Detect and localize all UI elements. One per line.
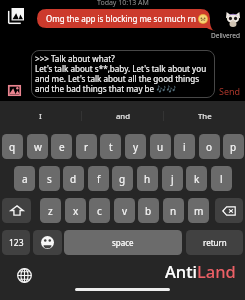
staticText: space: [112, 237, 134, 248]
button[interactable]: d: [63, 166, 84, 191]
staticText: and: [116, 111, 130, 122]
staticText: t: [109, 140, 113, 154]
staticText: return: [203, 237, 227, 248]
staticText: m: [194, 204, 204, 218]
button[interactable]: Photos: [7, 7, 24, 24]
button[interactable]: k: [186, 166, 207, 191]
button[interactable]: m: [188, 198, 209, 223]
staticText: Anti: [165, 260, 197, 282]
button[interactable]: x: [65, 198, 86, 223]
staticText: Send: [219, 85, 241, 97]
button[interactable]: t: [100, 134, 121, 159]
button[interactable]: h: [137, 166, 158, 191]
staticText: p: [230, 140, 237, 154]
button[interactable]: o: [199, 134, 220, 159]
staticText: z: [48, 204, 53, 218]
staticText: >>> Talk about what? Let's talk about s*…: [35, 53, 215, 94]
staticText: Land: [197, 260, 236, 282]
staticText: c: [97, 204, 102, 218]
button[interactable]: l: [211, 166, 232, 191]
staticText: a: [22, 172, 28, 186]
staticText: v: [122, 204, 128, 218]
staticText: g: [119, 172, 126, 186]
button[interactable]: j: [162, 166, 183, 191]
staticText: 123: [9, 237, 24, 249]
staticText: s: [47, 172, 52, 186]
staticText: k: [194, 172, 200, 186]
staticText: i: [183, 140, 186, 154]
staticText: Delivered: [211, 31, 240, 40]
button[interactable]: y: [125, 134, 146, 159]
button[interactable]: q: [2, 134, 23, 159]
staticText: Today 10:13 AM: [97, 0, 149, 8]
button[interactable]: n: [163, 198, 184, 223]
staticText: f: [97, 172, 101, 186]
staticText: Omg the app is blocking me so much rn: [46, 13, 198, 24]
staticText: I: [39, 111, 42, 122]
button[interactable]: >>> Talk about what? Let's talk about s*…: [31, 50, 215, 98]
button[interactable]: g: [112, 166, 133, 191]
staticText: y: [133, 140, 139, 154]
staticText: w: [34, 140, 42, 154]
button[interactable]: p: [223, 134, 244, 159]
staticText: r: [84, 140, 89, 154]
staticText: j: [171, 172, 174, 186]
button[interactable]: return: [186, 230, 243, 255]
staticText: o: [206, 140, 213, 154]
button[interactable]: f: [88, 166, 109, 191]
button[interactable]: z: [40, 198, 61, 223]
button[interactable]: Attach image: [6, 82, 22, 98]
button[interactable]: I: [0, 101, 81, 131]
button[interactable]: Space: [64, 230, 182, 255]
staticText: l: [220, 172, 223, 186]
button[interactable]: a: [14, 166, 35, 191]
button[interactable]: Shift: [2, 198, 31, 223]
button[interactable]: e: [51, 134, 72, 159]
staticText: h: [144, 172, 151, 186]
button[interactable]: u: [150, 134, 171, 159]
button[interactable]: and: [82, 101, 163, 131]
staticText: b: [145, 204, 152, 218]
button[interactable]: The: [164, 101, 245, 131]
button[interactable]: Emoji: [33, 230, 62, 255]
button[interactable]: c: [89, 198, 110, 223]
button[interactable]: Omg the app is blocking me so much rn: [37, 9, 216, 31]
button[interactable]: s: [39, 166, 60, 191]
button[interactable]: v: [114, 198, 135, 223]
button[interactable]: Numbers: [2, 230, 30, 255]
button[interactable]: r: [76, 134, 97, 159]
staticText: n: [170, 204, 177, 218]
button[interactable]: b: [138, 198, 159, 223]
staticText: x: [73, 204, 79, 218]
staticText: The: [198, 111, 212, 122]
staticText: d: [70, 172, 77, 186]
button[interactable]: i: [174, 134, 195, 159]
staticText: u: [157, 140, 164, 154]
button[interactable]: Profile picture: [224, 10, 241, 27]
button[interactable]: Send: [214, 83, 245, 98]
staticText: e: [59, 140, 65, 154]
button[interactable]: w: [27, 134, 48, 159]
staticText: q: [9, 140, 16, 154]
button[interactable]: Backspace: [215, 198, 243, 223]
button[interactable]: Change keyboard language: [16, 267, 33, 284]
